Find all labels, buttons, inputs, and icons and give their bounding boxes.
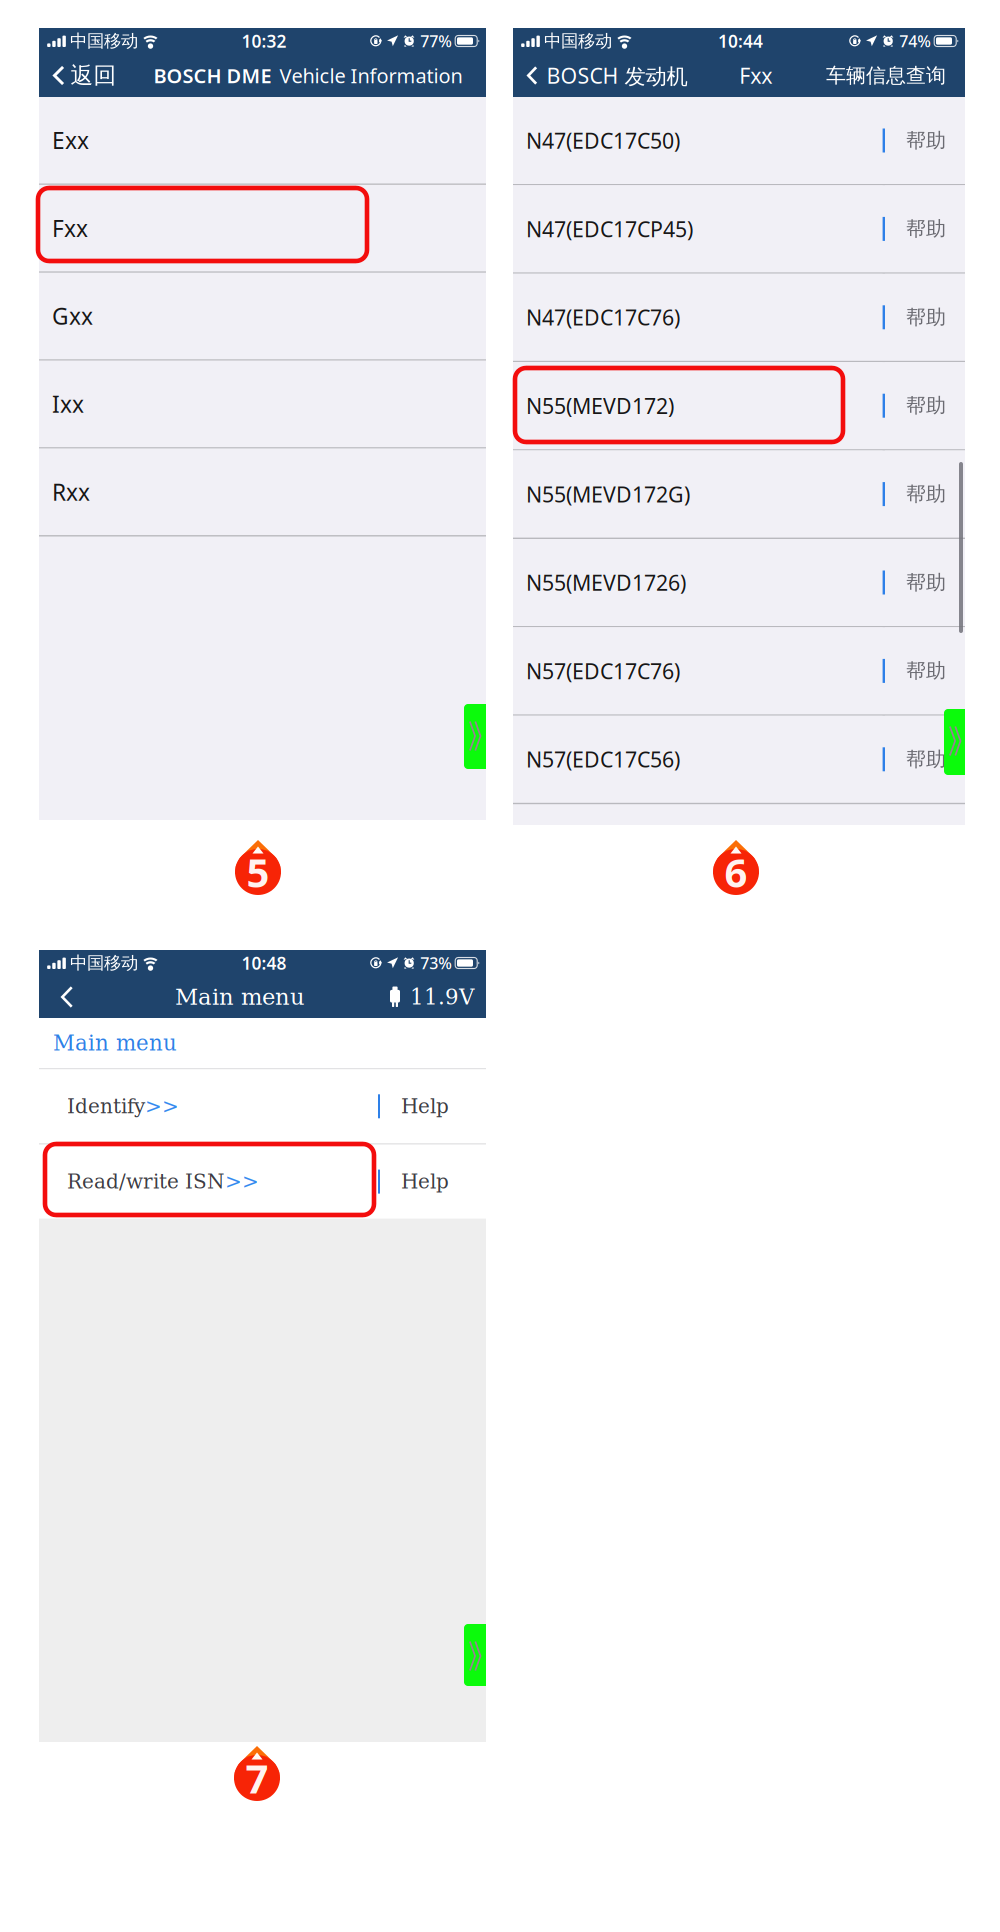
staticText: 帮助 xyxy=(906,128,946,153)
button[interactable]: Gxx xyxy=(39,273,486,359)
button[interactable]: Ixx xyxy=(39,361,486,447)
button[interactable]: N47(EDC17C76) xyxy=(513,274,883,361)
staticText: Help xyxy=(401,1170,449,1193)
staticText: Gxx xyxy=(52,301,93,331)
staticText: Help xyxy=(401,1095,449,1118)
staticText: Rxx xyxy=(52,477,90,507)
button[interactable]: 帮助 xyxy=(885,716,965,803)
button[interactable]: N47(EDC17C50) xyxy=(513,97,883,184)
staticText: 77% xyxy=(420,30,452,52)
staticText: Vehicle Information xyxy=(279,62,462,89)
button[interactable]: 帮助 xyxy=(885,97,965,184)
staticText: N47(EDC17CP45) xyxy=(526,215,693,243)
button[interactable]: Back xyxy=(39,976,91,1018)
button[interactable]: 帮助 xyxy=(885,274,965,361)
staticText: 帮助 xyxy=(906,217,946,241)
staticText: 10:48 xyxy=(242,951,287,974)
staticText: Ixx xyxy=(52,389,84,419)
button[interactable]: Open side panel xyxy=(944,709,969,775)
staticText: 帮助 xyxy=(906,305,946,330)
staticText: Main menu xyxy=(175,984,305,1010)
staticText: 中国移动 xyxy=(70,30,138,52)
button[interactable]: N47(EDC17CP45) xyxy=(513,185,883,272)
staticText: Fxx xyxy=(52,213,88,243)
staticText: BOSCH 发动机 xyxy=(546,61,687,90)
staticText: Fxx xyxy=(739,61,772,90)
staticText: >> xyxy=(145,1095,179,1118)
staticText: >> xyxy=(225,1170,259,1193)
staticText: 7 xyxy=(245,1751,268,1804)
button[interactable]: 帮助 xyxy=(885,627,965,714)
staticText: 74% xyxy=(899,30,931,52)
button[interactable]: Open side panel xyxy=(464,704,490,769)
staticText: 中国移动 xyxy=(544,30,612,52)
staticText: 帮助 xyxy=(906,570,946,595)
button[interactable]: 帮助 xyxy=(885,451,965,538)
staticText: Main menu xyxy=(53,1031,177,1055)
staticText: N57(EDC17C76) xyxy=(526,657,680,685)
button[interactable]: N55(MEVD172G) xyxy=(513,451,883,538)
staticText: 返回 xyxy=(70,62,116,89)
staticText: BOSCH DME xyxy=(153,62,271,89)
staticText: N47(EDC17C50) xyxy=(526,126,680,155)
button[interactable]: Read/write ISN xyxy=(39,1145,486,1219)
button[interactable]: 帮助 xyxy=(885,362,965,449)
button[interactable]: Identify xyxy=(39,1069,486,1143)
button[interactable]: N57(EDC17C56) xyxy=(513,716,883,803)
staticText: N57(EDC17C56) xyxy=(526,745,680,773)
staticText: N55(MEVD1726) xyxy=(526,568,686,597)
staticText: 11.9V xyxy=(410,985,474,1009)
button[interactable]: N55(MEVD1726) xyxy=(513,539,883,626)
staticText: 帮助 xyxy=(906,659,946,683)
staticText: 车辆信息查询 xyxy=(826,63,946,88)
staticText: Identify xyxy=(67,1095,145,1118)
button[interactable]: Rxx xyxy=(39,449,486,535)
staticText: 5 xyxy=(246,845,269,898)
button[interactable]: 返回 xyxy=(39,54,126,97)
button[interactable]: Fxx xyxy=(39,185,486,271)
staticText: N55(MEVD172G) xyxy=(526,480,690,508)
staticText: 73% xyxy=(420,952,452,974)
button[interactable]: Open side panel xyxy=(464,1624,490,1686)
button[interactable]: 帮助 xyxy=(885,185,965,272)
staticText: 6 xyxy=(724,845,747,898)
staticText: 中国移动 xyxy=(70,952,138,974)
button[interactable]: BOSCH 发动机 xyxy=(513,54,695,97)
staticText: Exx xyxy=(52,125,89,155)
button[interactable]: Exx xyxy=(39,97,486,183)
button[interactable]: 车辆信息查询 xyxy=(816,54,956,97)
staticText: 帮助 xyxy=(906,747,946,772)
staticText: N47(EDC17C76) xyxy=(526,303,680,331)
staticText: 帮助 xyxy=(906,482,946,506)
button[interactable]: N57(EDC17C76) xyxy=(513,627,883,714)
staticText: 10:44 xyxy=(718,29,763,52)
staticText: N55(MEVD172) xyxy=(526,391,674,420)
staticText: 帮助 xyxy=(906,393,946,418)
button[interactable]: 帮助 xyxy=(885,539,965,626)
button[interactable]: N55(MEVD172) xyxy=(513,362,883,449)
staticText: Read/write ISN xyxy=(67,1170,225,1193)
staticText: 10:32 xyxy=(242,29,287,52)
